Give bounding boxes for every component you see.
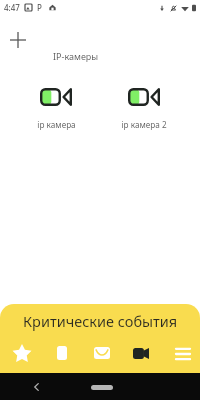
staticText: 4:47 <box>4 2 20 13</box>
button[interactable]: Menu <box>162 333 200 373</box>
staticText: P <box>37 2 42 13</box>
button[interactable]: Критические события <box>0 304 200 333</box>
button[interactable]: ip камера <box>12 84 100 134</box>
button[interactable]: Cameras <box>122 333 162 373</box>
button[interactable]: Add camera <box>6 28 30 52</box>
staticText: Критические события <box>23 311 178 331</box>
button[interactable]: Devices <box>42 333 82 373</box>
button[interactable]: Home <box>91 385 113 390</box>
button[interactable]: Favourites <box>2 333 42 373</box>
staticText: ip камера 2 <box>121 119 167 130</box>
staticText: ip камера <box>37 119 76 130</box>
button[interactable]: ip камера 2 <box>100 84 188 134</box>
button[interactable]: Back <box>28 379 44 395</box>
staticText: IP-камеры <box>53 50 99 62</box>
button[interactable]: Messages <box>82 333 122 373</box>
